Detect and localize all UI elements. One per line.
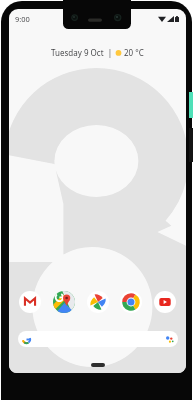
button[interactable]: Gmail [19, 291, 41, 313]
button[interactable]: Photos [87, 291, 109, 313]
staticText: 9:00 [15, 14, 30, 24]
button[interactable]: YouTube [154, 291, 176, 313]
button[interactable]: Home [91, 363, 105, 367]
button[interactable]: Maps [53, 291, 75, 313]
button[interactable]: Search [18, 331, 178, 347]
staticText: 20 °C [124, 47, 144, 58]
button[interactable]: Chrome [120, 291, 142, 313]
staticText: Tuesday 9 Oct | [51, 47, 113, 58]
